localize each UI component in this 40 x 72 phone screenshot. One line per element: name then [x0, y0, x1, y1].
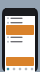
button[interactable]: Tab	[11, 66, 17, 72]
button[interactable]	[5, 16, 35, 20]
button[interactable]	[5, 57, 35, 66]
button[interactable]	[5, 25, 35, 35]
button[interactable]: Tab	[23, 66, 29, 72]
button[interactable]	[5, 35, 35, 39]
button[interactable]: Tab	[17, 66, 23, 72]
button[interactable]: Tab	[5, 66, 11, 72]
button[interactable]: Tab	[29, 66, 35, 72]
button[interactable]	[5, 20, 35, 25]
button[interactable]	[5, 39, 35, 44]
